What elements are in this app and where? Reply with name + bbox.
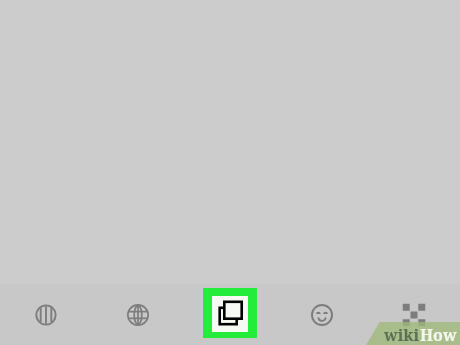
button[interactable]: Tabs: [203, 288, 257, 338]
button[interactable]: Tabs: [184, 284, 276, 345]
button[interactable]: Globe: [92, 284, 184, 345]
button[interactable]: Blur: [368, 284, 460, 345]
button[interactable]: Panorama: [0, 284, 92, 345]
button[interactable]: Smiley: [276, 284, 368, 345]
staticText: How: [420, 324, 457, 345]
staticText: wiki: [384, 324, 420, 345]
